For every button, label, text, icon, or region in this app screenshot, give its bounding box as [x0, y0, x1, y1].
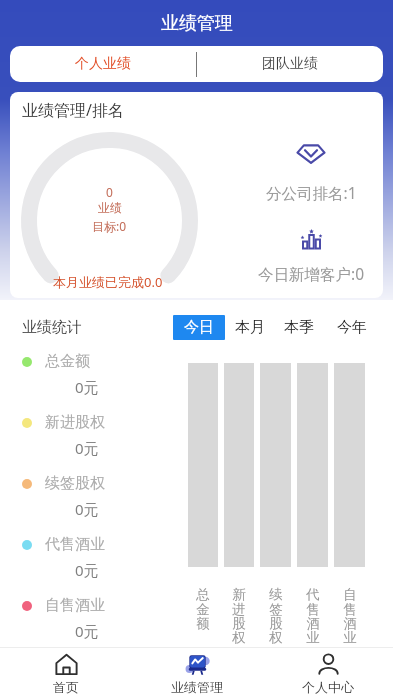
- staticText: 今日新增客户:0: [258, 263, 365, 284]
- other: 今日新增客户: [299, 227, 324, 252]
- staticText: 总 金 额: [196, 586, 210, 632]
- staticText: 今日: [184, 318, 214, 337]
- staticText: 团队业绩: [262, 55, 318, 73]
- staticText: 续签股权: [45, 474, 105, 493]
- staticText: 0元: [75, 621, 99, 641]
- staticText: 0: [106, 184, 113, 200]
- button[interactable]: 本季: [275, 315, 323, 340]
- staticText: 新进股权: [45, 413, 105, 432]
- staticText: 新 进 股 权: [232, 586, 246, 646]
- staticText: 业绩统计: [22, 318, 82, 337]
- staticText: 首页: [53, 679, 79, 695]
- staticText: 代售酒业: [45, 535, 105, 554]
- staticText: 代 售 酒 业: [306, 586, 320, 646]
- staticText: 续 签 股 权: [269, 586, 283, 646]
- staticText: 本月: [235, 318, 265, 337]
- staticText: 业绩: [98, 200, 122, 215]
- staticText: 分公司排名:1: [266, 182, 357, 203]
- button[interactable]: 个人业绩: [10, 46, 196, 82]
- staticText: 0元: [75, 438, 99, 458]
- button[interactable]: 个人中心: [262, 648, 393, 700]
- staticText: 业绩管理: [161, 12, 233, 35]
- staticText: 业绩管理/排名: [22, 99, 124, 121]
- staticText: 自 售 酒 业: [343, 586, 357, 646]
- staticText: 自售酒业: [45, 596, 105, 615]
- staticText: 个人业绩: [75, 55, 131, 73]
- staticText: 今年: [337, 318, 367, 337]
- staticText: 业绩管理: [171, 679, 223, 695]
- staticText: 目标:0: [92, 218, 127, 234]
- staticText: 0元: [75, 377, 99, 397]
- staticText: 个人中心: [302, 679, 354, 695]
- button[interactable]: 本月: [226, 315, 274, 340]
- staticText: 本月业绩已完成0.0: [53, 273, 163, 291]
- button[interactable]: 业绩管理: [131, 648, 262, 700]
- button[interactable]: 今年: [328, 315, 376, 340]
- staticText: 0元: [75, 560, 99, 580]
- staticText: 总金额: [45, 352, 90, 371]
- button[interactable]: 团队业绩: [197, 46, 383, 82]
- staticText: 本季: [284, 318, 314, 337]
- other: 分公司排名: [296, 137, 326, 167]
- button[interactable]: 首页: [0, 648, 131, 700]
- staticText: 0元: [75, 499, 99, 519]
- button[interactable]: 今日: [173, 315, 225, 340]
